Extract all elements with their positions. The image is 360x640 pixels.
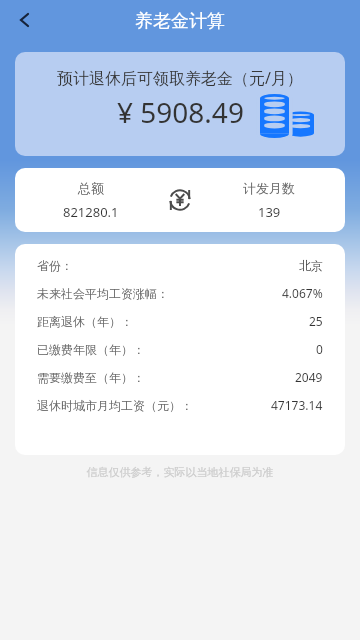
staticText: 总额 [78,180,104,196]
staticText: 25 [309,313,323,329]
staticText: 139 [258,203,281,221]
staticText: 已缴费年限（年）： [37,342,145,357]
staticText: 4.067% [282,285,323,301]
staticText: 信息仅供参考，实际以当地社保局为准 [15,465,345,479]
staticText: 2049 [295,369,323,385]
staticText: 需要缴费至（年）： [37,370,145,385]
staticText: 北京 [299,258,323,273]
staticText: 0 [316,341,323,357]
staticText: 退休时城市月均工资（元）： [37,398,193,413]
staticText: 47173.14 [271,397,323,413]
staticText: 计发月数 [243,180,295,196]
button[interactable]: Back [0,0,48,42]
staticText: 未来社会平均工资涨幅： [37,286,169,301]
staticText: 养老金计算 [135,10,225,33]
staticText: ¥ 5908.49 [117,93,244,131]
staticText: 821280.1 [63,203,119,221]
staticText: 距离退休（年）： [37,314,133,329]
staticText: 预计退休后可领取养老金（元/月） [57,67,303,89]
staticText: 省份： [37,258,73,273]
